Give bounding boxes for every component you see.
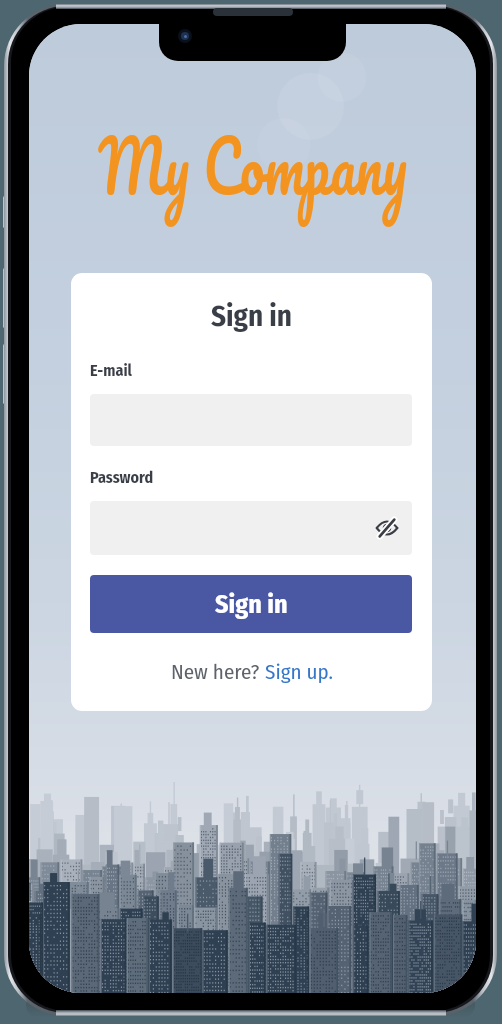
staticText: Password — [90, 468, 154, 487]
staticText: My Company — [29, 104, 476, 227]
staticText: Sign up. — [265, 659, 333, 684]
button[interactable]: Sign up. — [265, 659, 333, 684]
staticText: Sign in — [71, 299, 432, 334]
staticText: Sign in — [215, 589, 288, 620]
button[interactable]: Toggle password visibility — [90, 501, 412, 555]
button[interactable]: Sign in — [90, 575, 412, 633]
staticText: E-mail — [90, 361, 132, 380]
button[interactable]: Toggle password visibility — [372, 513, 402, 543]
staticText: New here? — [171, 659, 265, 684]
